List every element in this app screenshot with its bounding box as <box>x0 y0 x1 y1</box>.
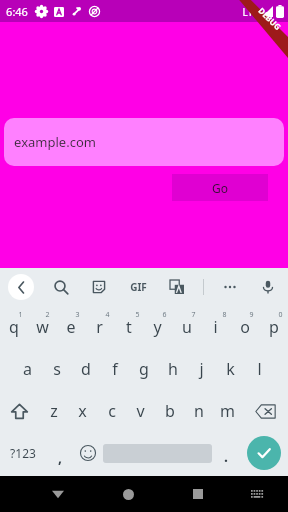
staticText: u <box>182 316 192 338</box>
staticText: ?123 <box>10 445 36 461</box>
staticText: 8 <box>222 310 227 320</box>
staticText: . <box>224 447 228 466</box>
staticText: a <box>23 358 32 380</box>
button[interactable]: l <box>245 348 274 390</box>
button[interactable]: Go <box>172 174 268 201</box>
button[interactable]: d <box>71 348 100 390</box>
button[interactable]: a <box>13 348 42 390</box>
staticText: 1 <box>18 310 23 320</box>
button[interactable]: Home <box>113 479 143 509</box>
staticText: 5 <box>135 310 140 320</box>
button[interactable]: example.com <box>4 118 284 166</box>
staticText: s <box>53 358 61 380</box>
button[interactable]: Recents <box>183 479 213 509</box>
staticText: 3 <box>75 310 80 320</box>
staticText: GIF <box>130 280 147 294</box>
button[interactable]: n <box>184 390 213 432</box>
staticText: r <box>96 316 103 338</box>
staticText: 2 <box>45 310 50 320</box>
button[interactable]: h <box>158 348 187 390</box>
staticText: q <box>9 316 19 338</box>
staticText: y <box>153 316 162 338</box>
button[interactable]: f <box>100 348 129 390</box>
staticText: e <box>66 316 76 338</box>
staticText: i <box>213 316 218 338</box>
button[interactable]: w <box>28 306 56 348</box>
staticText: l <box>257 358 262 380</box>
button[interactable]: More options <box>218 275 242 299</box>
button[interactable]: j <box>187 348 216 390</box>
button[interactable]: y <box>143 306 172 348</box>
staticText: c <box>108 400 116 422</box>
button[interactable]: k <box>216 348 245 390</box>
staticText: o <box>240 316 250 338</box>
staticText: w <box>36 316 49 338</box>
staticText: example.com <box>14 133 96 151</box>
staticText: x <box>78 400 87 422</box>
button[interactable]: p <box>259 306 288 348</box>
staticText: 9 <box>249 310 254 320</box>
button[interactable]: Shift <box>0 390 39 432</box>
staticText: g <box>139 358 149 380</box>
button[interactable]: r <box>85 306 114 348</box>
button[interactable]: z <box>39 390 68 432</box>
button[interactable]: . <box>212 432 239 474</box>
staticText: z <box>50 400 58 422</box>
staticText: f <box>112 358 118 380</box>
staticText: 6 <box>162 310 167 320</box>
staticText: 0 <box>278 310 283 320</box>
staticText: Go <box>212 180 228 196</box>
button[interactable]: g <box>129 348 158 390</box>
button[interactable]: Emoji <box>73 432 103 474</box>
button[interactable]: s <box>42 348 71 390</box>
button[interactable]: t <box>114 306 143 348</box>
button[interactable]: Stickers <box>87 275 111 299</box>
button[interactable]: Search <box>49 275 73 299</box>
button[interactable]: q <box>0 306 28 348</box>
button[interactable]: e <box>56 306 85 348</box>
staticText: t <box>126 316 132 338</box>
button[interactable]: Translate <box>165 275 189 299</box>
button[interactable]: c <box>97 390 126 432</box>
button[interactable]: Back <box>8 274 34 300</box>
staticText: 4 <box>105 310 110 320</box>
button[interactable]: i <box>201 306 230 348</box>
staticText: m <box>220 400 235 422</box>
staticText: LTE <box>242 5 259 19</box>
staticText: DEBUG <box>256 5 284 32</box>
staticText: h <box>168 358 178 380</box>
staticText: k <box>226 358 235 380</box>
button[interactable]: Enter <box>247 436 281 470</box>
staticText: n <box>194 400 204 422</box>
button[interactable]: Backspace <box>242 390 288 432</box>
staticText: j <box>199 358 204 380</box>
button[interactable]: Back <box>43 479 73 509</box>
staticText: d <box>81 358 91 380</box>
staticText: b <box>165 400 175 422</box>
staticText: 6:46 <box>6 4 28 19</box>
button[interactable]: , <box>46 432 73 474</box>
button[interactable]: Voice input <box>256 275 280 299</box>
button[interactable]: b <box>155 390 184 432</box>
staticText: 7 <box>191 310 196 320</box>
button[interactable]: ?123 <box>0 432 46 474</box>
button[interactable]: x <box>68 390 97 432</box>
button[interactable]: GIF <box>125 274 151 300</box>
button[interactable]: m <box>213 390 242 432</box>
button[interactable]: Switch keyboard <box>244 481 270 507</box>
staticText: p <box>269 316 279 338</box>
staticText: , <box>58 448 62 467</box>
staticText: v <box>136 400 145 422</box>
button[interactable]: u <box>172 306 201 348</box>
button[interactable]: o <box>230 306 259 348</box>
button[interactable]: v <box>126 390 155 432</box>
